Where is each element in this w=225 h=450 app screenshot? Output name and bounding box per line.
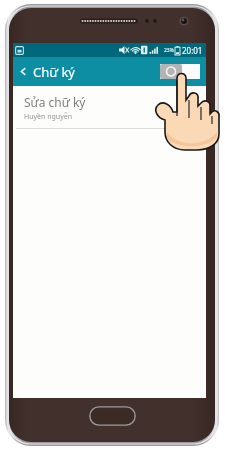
- staticText: Huyền nguyễn: [24, 112, 72, 122]
- button[interactable]: Toggle signature: [160, 64, 200, 79]
- staticText: 20:01: [182, 45, 203, 56]
- button[interactable]: Back: [13, 57, 33, 86]
- button[interactable]: Sửa chữ ký: [13, 86, 206, 128]
- staticText: Chữ ký: [33, 63, 75, 81]
- staticText: Sửa chữ ký: [24, 94, 86, 110]
- staticText: 23%: [164, 47, 174, 54]
